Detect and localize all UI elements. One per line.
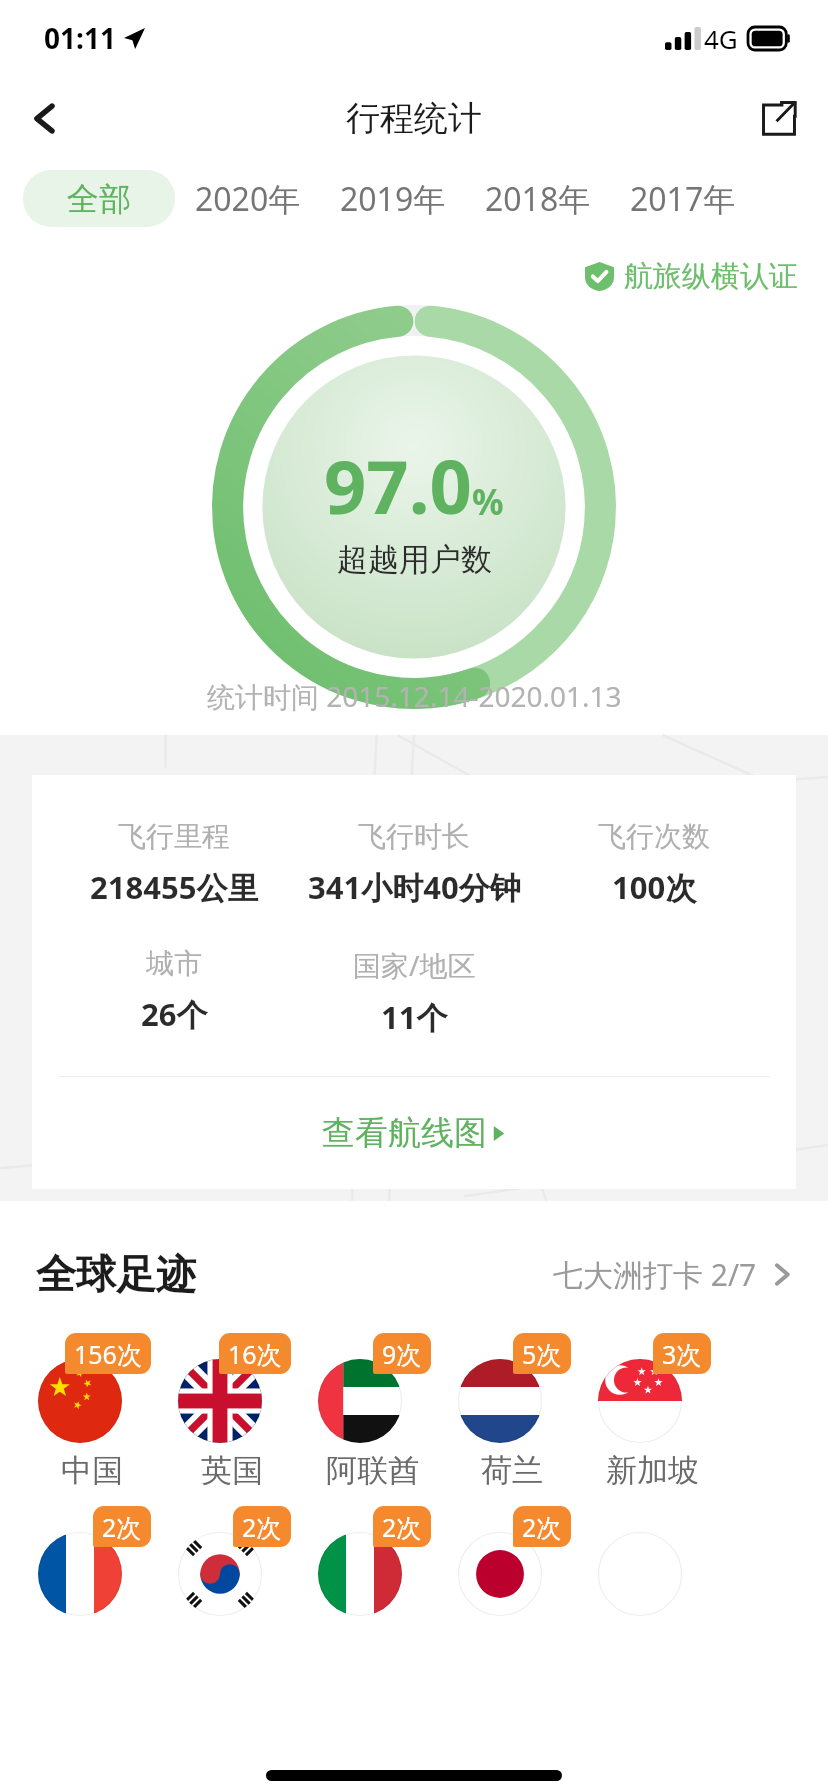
staticText: 341小时40分钟 [308, 866, 521, 908]
staticText: 2次 [242, 1510, 282, 1544]
button[interactable]: 156次 [22, 1333, 162, 1490]
staticText: 航旅纵横认证 [624, 258, 798, 295]
staticText: 城市 [146, 946, 202, 981]
button[interactable]: Country [302, 1506, 442, 1616]
staticText: 2次 [522, 1510, 562, 1544]
staticText: 100次 [612, 866, 697, 908]
staticText: 4G [704, 21, 738, 56]
staticText: 七大洲打卡 2/7 [553, 1254, 757, 1295]
button[interactable]: 2020年 [175, 170, 320, 227]
button[interactable]: 2019年 [320, 170, 465, 227]
staticText: 5次 [522, 1337, 562, 1371]
staticText: 3次 [662, 1337, 702, 1371]
button[interactable]: 全部 [23, 170, 175, 227]
staticText: 218455公里 [90, 866, 259, 908]
button[interactable]: 5次 [442, 1333, 582, 1490]
staticText: 中国 [61, 1451, 123, 1490]
staticText: 2018年 [485, 177, 591, 221]
staticText: 统计时间 2015.12.14-2020.01.13 [207, 677, 622, 715]
button[interactable]: Country [162, 1506, 302, 1616]
button[interactable]: 16次 [162, 1333, 302, 1490]
staticText: 26个 [141, 993, 208, 1035]
button[interactable]: Share [746, 85, 812, 151]
staticText: 行程统计 [346, 97, 482, 140]
staticText: 9次 [382, 1337, 422, 1371]
staticText: 国家/地区 [353, 946, 476, 984]
staticText: 查看航线图 [322, 1112, 487, 1154]
staticText: 156次 [74, 1337, 142, 1371]
button[interactable]: 2017年 [610, 170, 755, 227]
staticText: 阿联酋 [326, 1451, 419, 1490]
button[interactable]: 9次 [302, 1333, 442, 1490]
staticText: 新加坡 [606, 1451, 699, 1490]
staticText: 16次 [228, 1337, 282, 1371]
button[interactable]: Country [442, 1506, 582, 1616]
staticText: 全部 [67, 179, 131, 219]
button[interactable]: 2018年 [465, 170, 610, 227]
staticText: 超越用户数 [337, 540, 492, 579]
button[interactable]: Back [12, 85, 78, 151]
staticText: 荷兰 [481, 1451, 543, 1490]
staticText: 2次 [382, 1510, 422, 1544]
staticText: 全球足迹 [36, 1249, 196, 1299]
staticText: 2020年 [195, 177, 301, 221]
staticText: 01:11 [44, 19, 116, 57]
staticText: 11个 [381, 996, 448, 1038]
staticText: 2次 [102, 1510, 142, 1544]
staticText: 英国 [201, 1451, 263, 1490]
staticText: 飞行时长 [358, 819, 470, 854]
staticText: 飞行里程 [118, 819, 230, 854]
staticText: 97.0 [324, 435, 472, 536]
button[interactable]: 全球足迹 [36, 1249, 792, 1299]
staticText: % [472, 478, 504, 526]
button[interactable]: 查看航线图 [32, 1077, 796, 1189]
staticText: 飞行次数 [598, 819, 710, 854]
staticText: 2019年 [340, 177, 446, 221]
button[interactable]: Country [22, 1506, 162, 1616]
button[interactable]: 3次 [582, 1333, 722, 1490]
staticText: 2017年 [630, 177, 736, 221]
